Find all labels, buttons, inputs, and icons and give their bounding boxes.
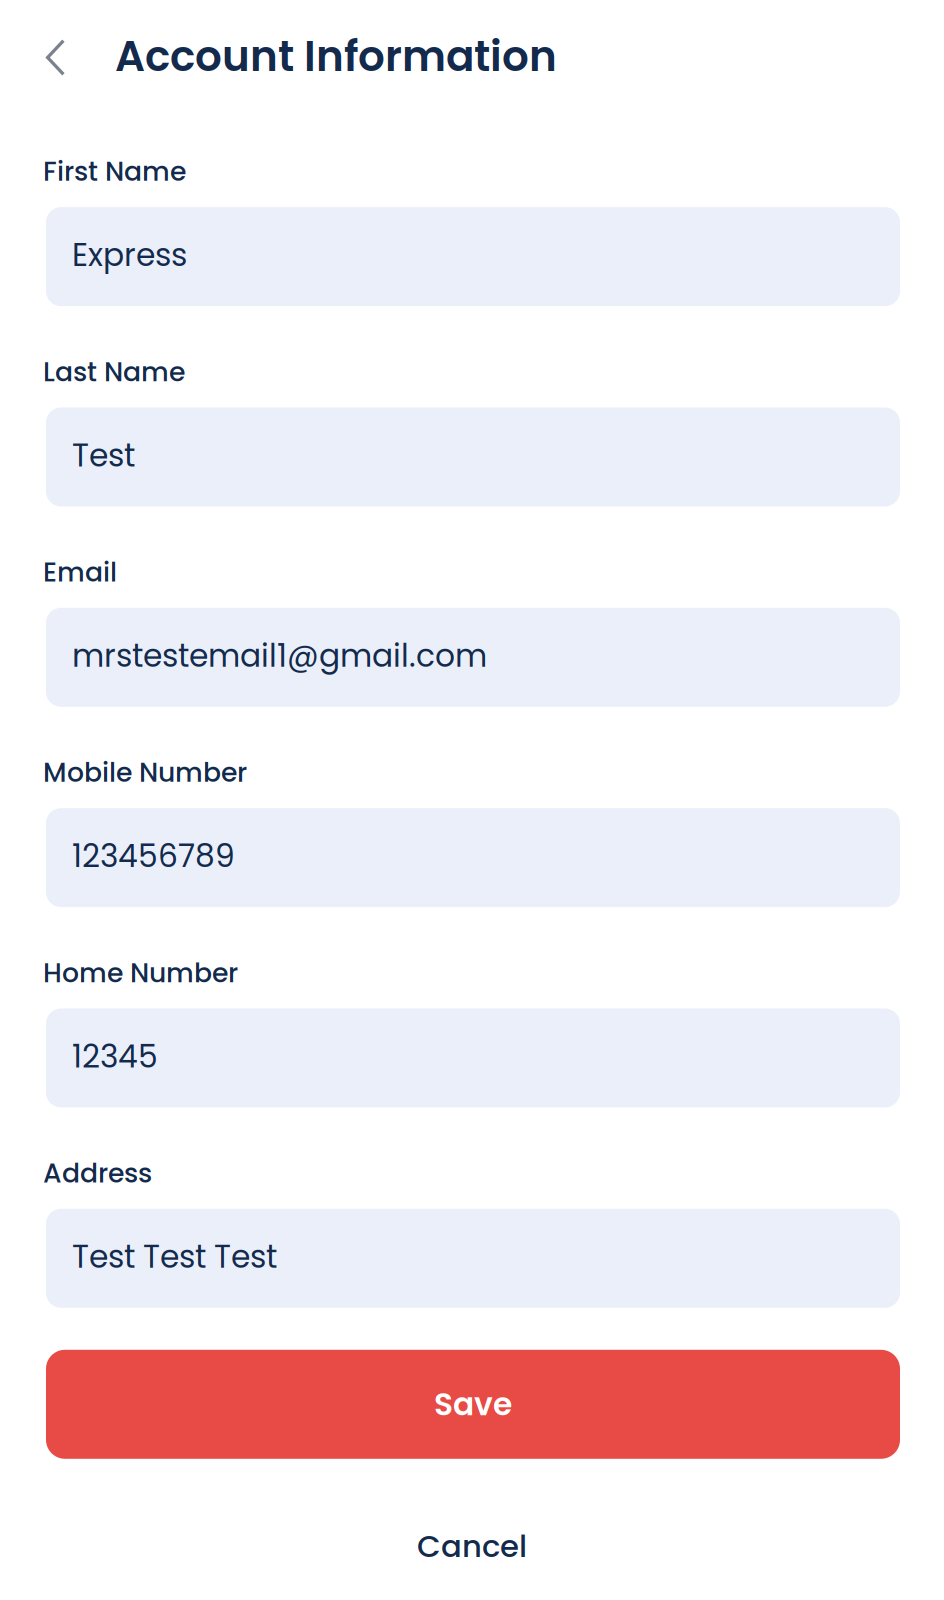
staticText: 123456789 (72, 834, 235, 878)
staticText: Test (72, 433, 135, 477)
button[interactable]: Test Test Test (46, 1209, 900, 1308)
staticText: Last Name (43, 353, 185, 390)
button[interactable]: Test (46, 407, 900, 506)
button[interactable]: Cancel (393, 1506, 551, 1587)
button[interactable]: 12345 (46, 1008, 900, 1107)
staticText: First Name (43, 153, 186, 190)
button[interactable]: 123456789 (46, 808, 900, 907)
staticText: Cancel (417, 1525, 527, 1568)
staticText: 12345 (72, 1034, 158, 1078)
staticText: Home Number (43, 954, 238, 991)
staticText: Save (434, 1382, 512, 1426)
staticText: Account Information (115, 27, 557, 86)
staticText: Express (72, 233, 187, 277)
staticText: Address (43, 1154, 152, 1192)
staticText: Test Test Test (72, 1235, 277, 1279)
staticText: Email (43, 553, 117, 591)
staticText: Mobile Number (43, 754, 247, 791)
button[interactable]: Save (46, 1350, 900, 1459)
button[interactable]: Express (46, 207, 900, 306)
staticText: mrstestemail1@gmail.com (72, 634, 487, 678)
button[interactable]: mrstestemail1@gmail.com (46, 608, 900, 707)
button[interactable]: Back (0, 0, 115, 85)
